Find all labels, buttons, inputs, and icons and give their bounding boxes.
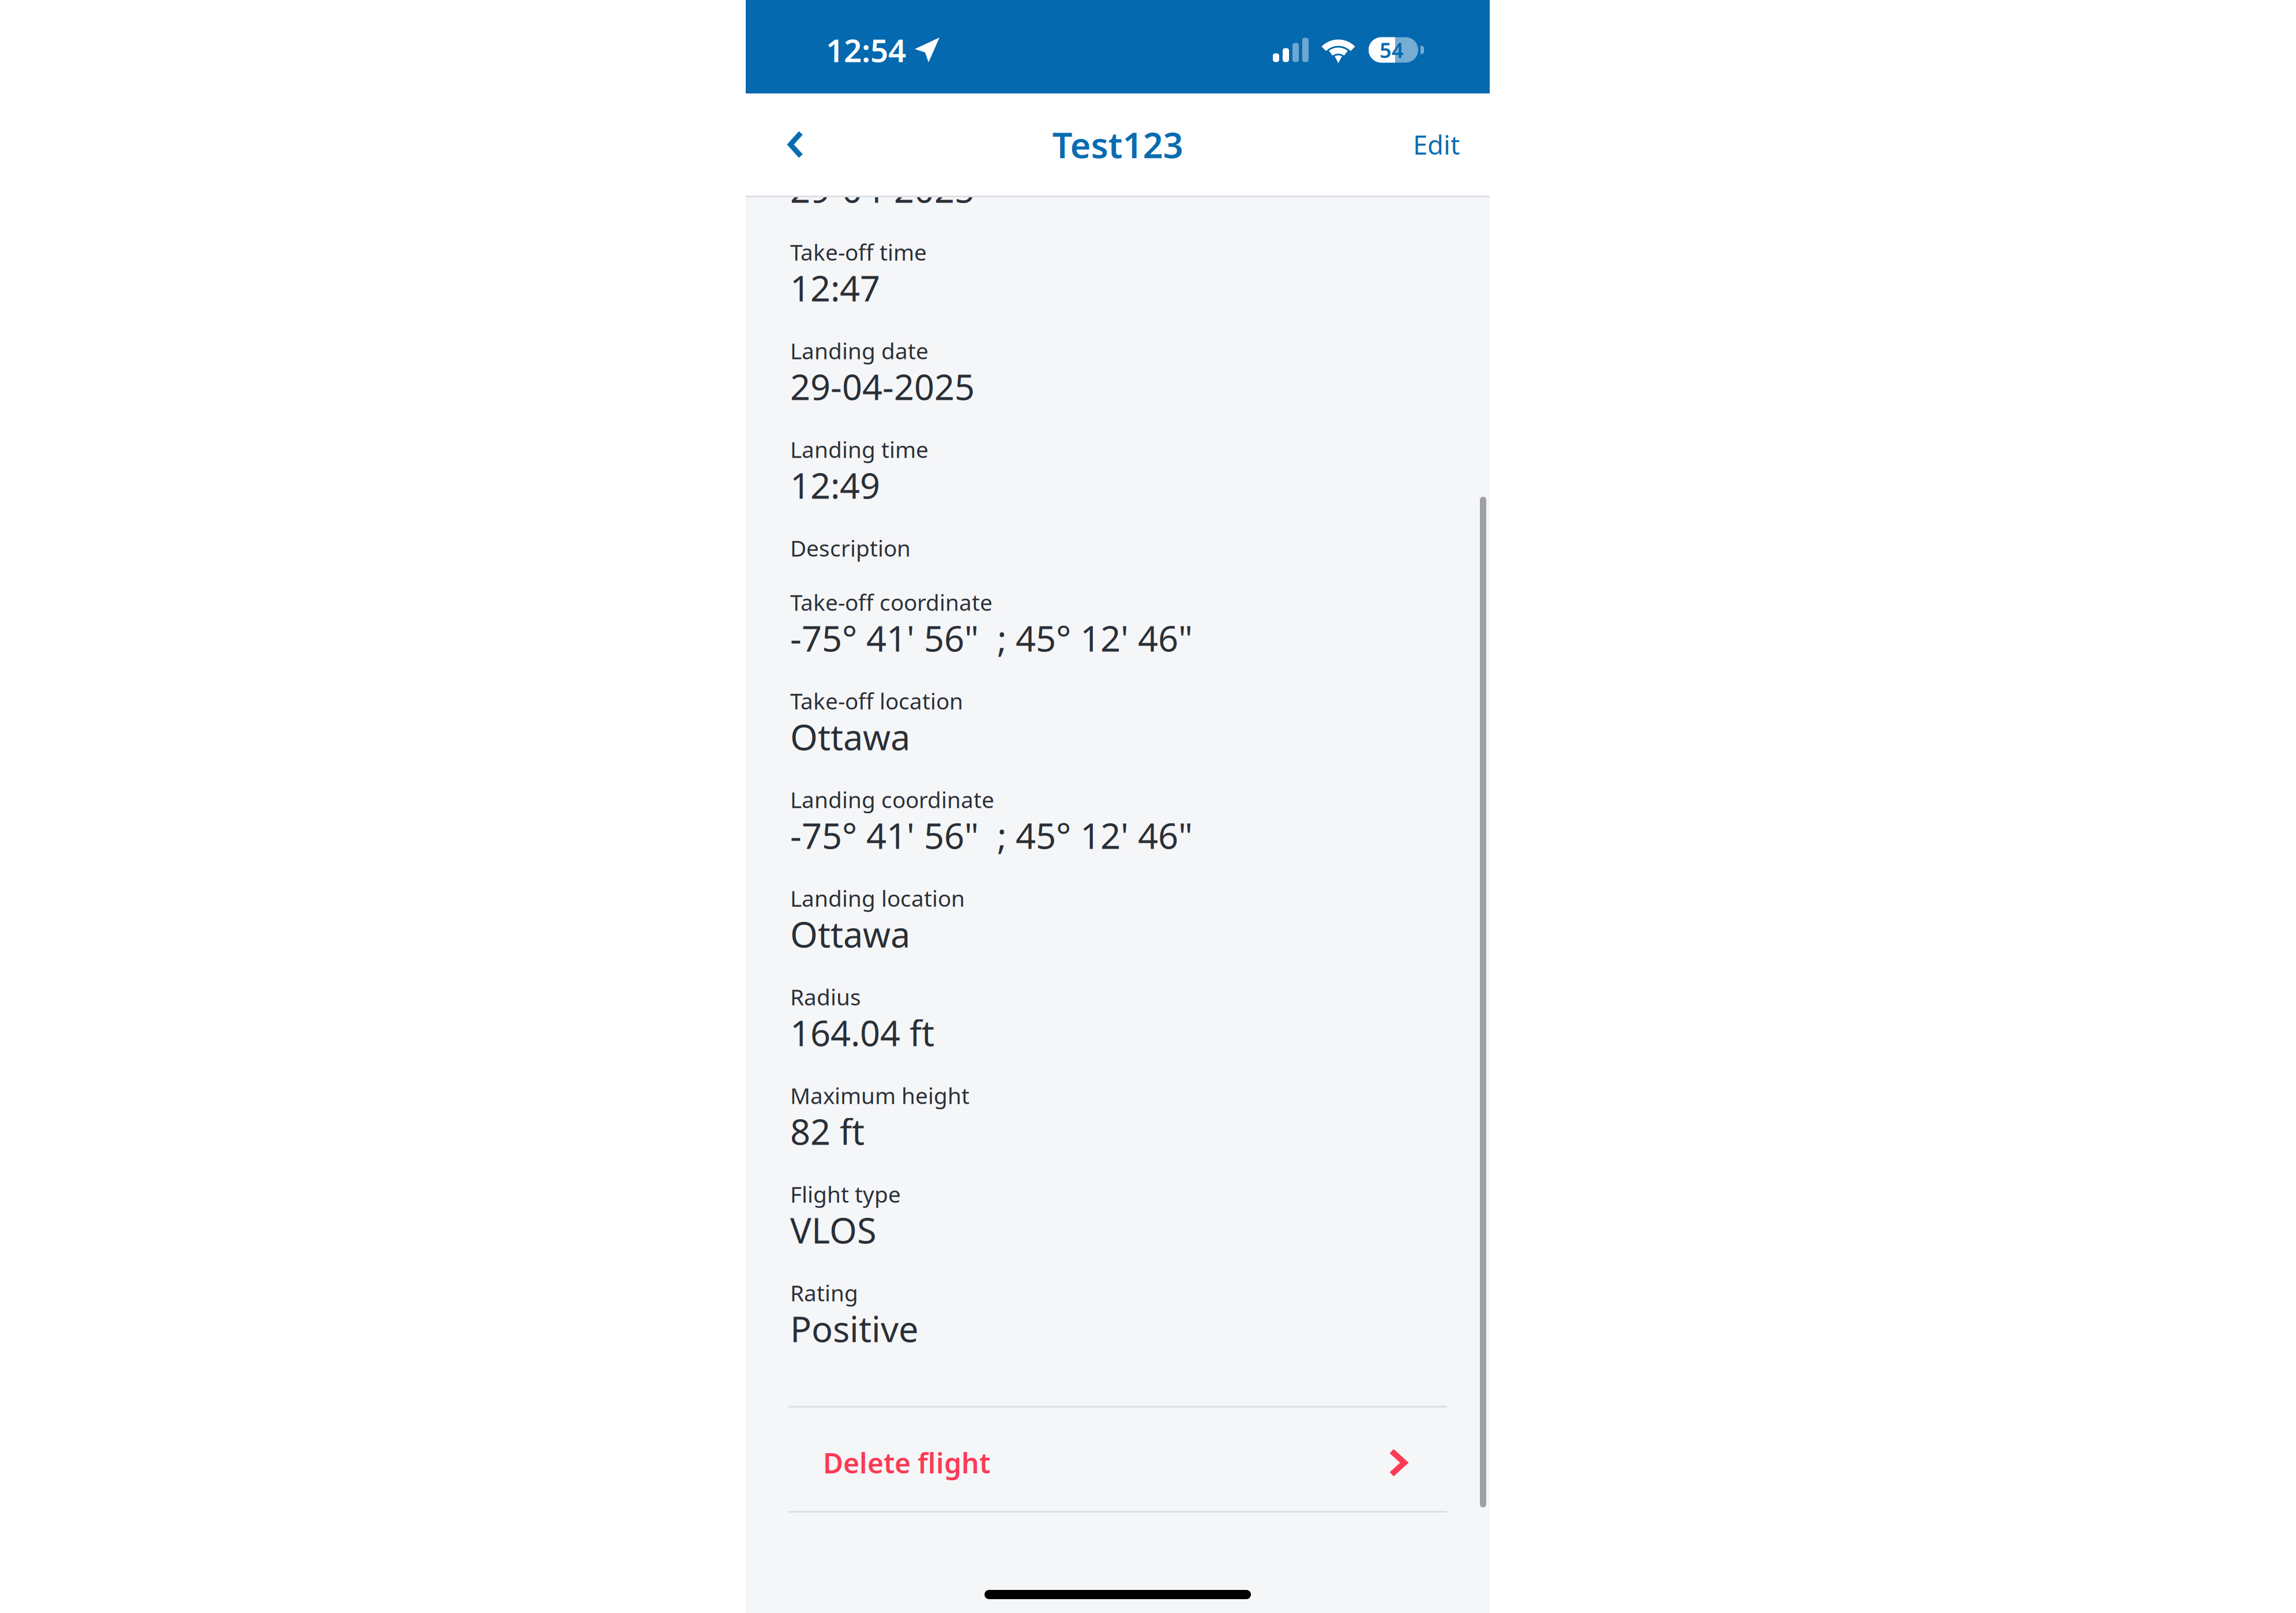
staticText: Maximum height — [790, 1081, 969, 1110]
staticText: -75° 41' 56" ; 45° 12' 46" — [790, 812, 1193, 859]
button[interactable]: Delete flight — [788, 1408, 1447, 1511]
staticText: 29-04-2025 — [790, 166, 975, 213]
staticText: Radius — [790, 982, 861, 1011]
staticText: 12:47 — [790, 264, 880, 311]
staticText: 12:49 — [790, 462, 880, 508]
staticText: Ottawa — [790, 713, 910, 760]
staticText: 82 ft — [790, 1108, 865, 1155]
staticText: Test123 — [1052, 121, 1183, 168]
staticText: 12:54 — [826, 29, 906, 71]
staticText: -75° 41' 56" ; 45° 12' 46" — [790, 614, 1193, 661]
staticText: Delete flight — [823, 1444, 990, 1481]
staticText: Ottawa — [790, 910, 910, 957]
staticText: 164.04 ft — [790, 1009, 934, 1056]
staticText: Take-off location — [790, 686, 963, 716]
button[interactable]: Edit — [1383, 110, 1490, 179]
staticText: Description — [790, 533, 911, 563]
staticText: VLOS — [790, 1206, 877, 1253]
staticText: 29-04-2025 — [790, 363, 975, 410]
staticText: Positive — [790, 1305, 919, 1352]
staticText: Flight type — [790, 1179, 901, 1209]
staticText: Landing time — [790, 434, 929, 464]
button[interactable]: Back — [746, 102, 851, 187]
staticText: Take-off coordinate — [790, 587, 993, 617]
staticText: Landing location — [790, 883, 965, 913]
staticText: Landing date — [790, 336, 929, 365]
staticText: Rating — [790, 1278, 858, 1307]
staticText: 54 — [1380, 36, 1404, 64]
staticText: Edit — [1413, 127, 1460, 162]
staticText: Landing coordinate — [790, 785, 994, 814]
staticText: Take-off time — [790, 237, 927, 267]
